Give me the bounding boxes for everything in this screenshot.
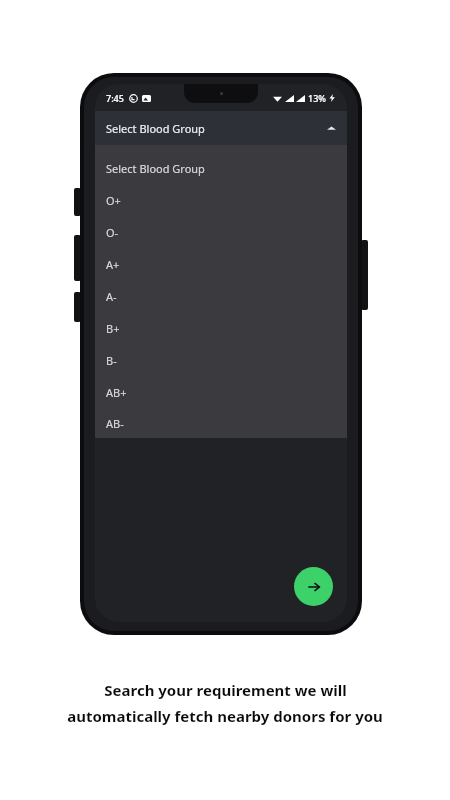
staticText: B- bbox=[106, 353, 117, 368]
staticText: A- bbox=[106, 289, 117, 304]
staticText: 13% bbox=[308, 92, 326, 104]
button[interactable]: B+ bbox=[95, 312, 347, 344]
button[interactable]: Select Blood Group bbox=[95, 111, 347, 145]
staticText: AB+ bbox=[106, 385, 127, 400]
button[interactable]: A+ bbox=[95, 248, 347, 280]
button[interactable]: AB- bbox=[95, 408, 347, 438]
staticText: O+ bbox=[106, 193, 121, 208]
button[interactable]: A- bbox=[95, 280, 347, 312]
button[interactable]: AB+ bbox=[95, 376, 347, 408]
button[interactable]: O+ bbox=[95, 184, 347, 216]
staticText: B+ bbox=[106, 321, 120, 336]
button[interactable]: O- bbox=[95, 216, 347, 248]
button[interactable]: Select Blood Group bbox=[95, 152, 347, 184]
staticText: AB- bbox=[106, 416, 124, 431]
staticText: A+ bbox=[106, 257, 120, 272]
button[interactable]: Next bbox=[294, 567, 333, 606]
staticText: 7:45 bbox=[106, 92, 124, 104]
button[interactable]: B- bbox=[95, 344, 347, 376]
staticText: Search your requirement we will bbox=[104, 680, 347, 700]
staticText: Select Blood Group bbox=[106, 161, 205, 176]
staticText: Select Blood Group bbox=[106, 121, 205, 136]
staticText: automatically fetch nearby donors for yo… bbox=[67, 706, 383, 726]
staticText: O- bbox=[106, 225, 119, 240]
